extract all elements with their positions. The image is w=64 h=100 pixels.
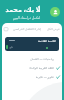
other: Calendar	[4, 27, 8, 31]
staticText: عرض الكل	[46, 27, 60, 31]
staticText: تابع	[9, 46, 13, 49]
button[interactable]: اللغة العربية الوحدة	[4, 63, 60, 72]
button[interactable]: الحصة القادمة	[5, 37, 59, 51]
button[interactable]: Profile	[50, 7, 60, 17]
button[interactable]: علوم — تجربة	[4, 72, 60, 81]
staticText: علوم — تجربة	[35, 75, 54, 79]
staticText: الحصة القادمة	[38, 39, 56, 43]
button[interactable]: Calendar	[4, 23, 60, 34]
staticText: أهلًا بك، محمد	[5, 5, 40, 14]
staticText: اللغة العربية الوحدة	[29, 66, 54, 70]
staticText: رياضيات — الفصل	[30, 57, 54, 61]
staticText: لنكمل دراستك اليوم	[12, 15, 40, 19]
staticText: إدارة الفصل الدراسي	[13, 27, 41, 31]
button[interactable]: رياضيات — الفصل	[4, 54, 60, 63]
